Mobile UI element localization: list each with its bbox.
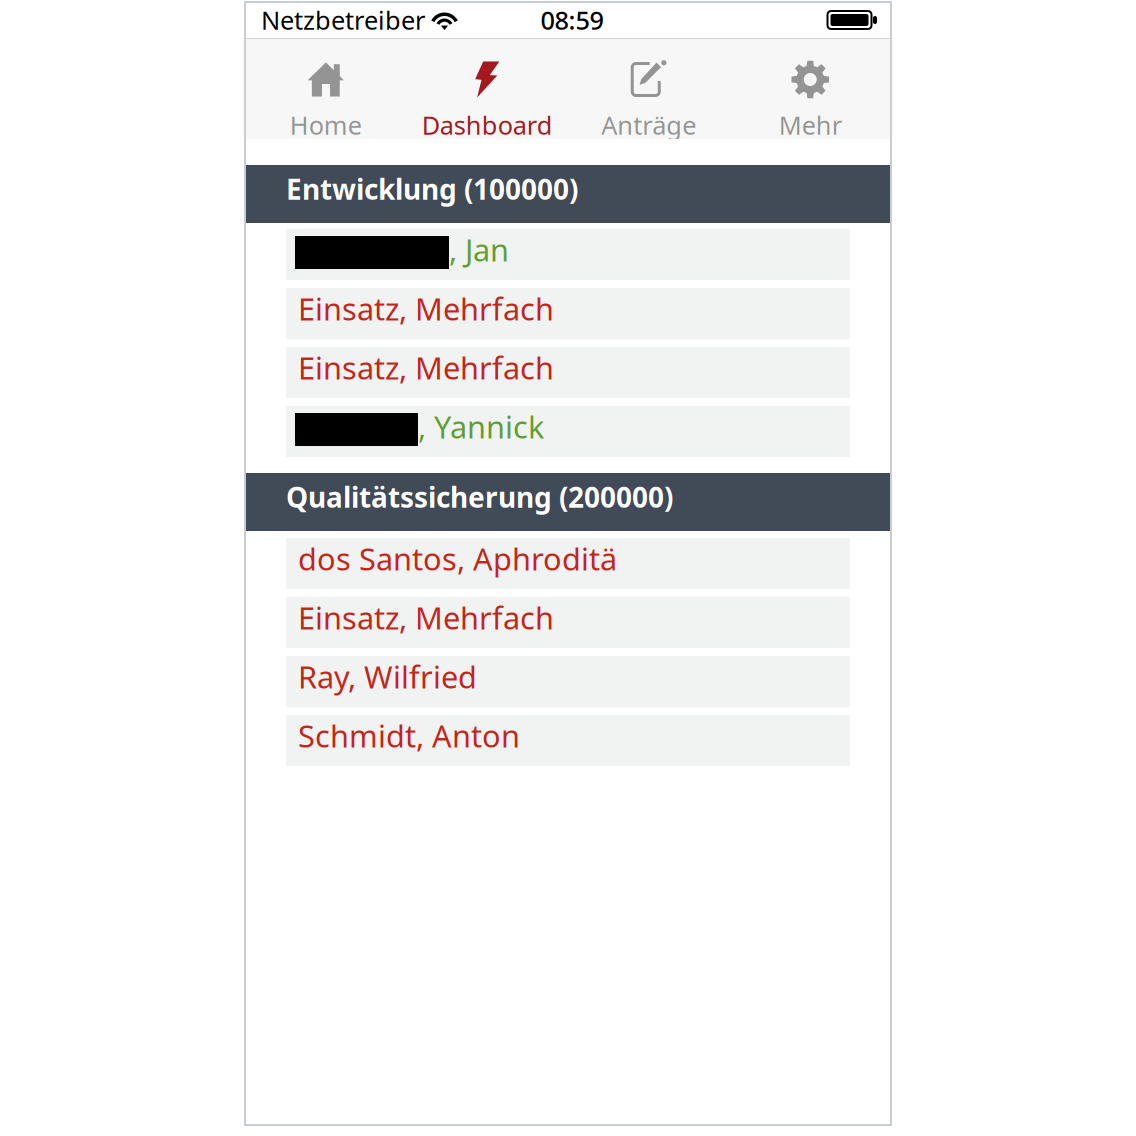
staticText: dos Santos, Aphroditä [298, 538, 617, 579]
button[interactable]: Schmidt, Anton [286, 715, 850, 766]
staticText: Einsatz, Mehrfach [298, 347, 554, 388]
staticText: Netzbetreiber [261, 3, 425, 37]
staticText: 08:59 [540, 3, 603, 37]
staticText: Ray, Wilfried [298, 656, 477, 697]
staticText: Schmidt, Anton [298, 715, 520, 756]
staticText: Qualitätssicherung (200000) [286, 478, 673, 516]
staticText: Anträge [601, 108, 696, 142]
button[interactable]: Mehr [729, 39, 891, 139]
button[interactable]: Einsatz, Mehrfach [286, 597, 850, 648]
button[interactable]: Ray, Wilfried [286, 656, 850, 707]
button[interactable]: , Yannick [286, 406, 850, 457]
staticText: , Jan [449, 229, 509, 270]
button[interactable]: Dashboard [406, 39, 568, 139]
button[interactable]: dos Santos, Aphroditä [286, 538, 850, 589]
staticText: Dashboard [422, 108, 553, 142]
staticText: Einsatz, Mehrfach [298, 288, 554, 329]
button[interactable]: Home [245, 39, 406, 139]
staticText: , Yannick [418, 406, 544, 447]
button[interactable]: Anträge [568, 39, 729, 139]
staticText: Entwicklung (100000) [286, 170, 578, 208]
staticText: Home [290, 108, 362, 142]
staticText: Mehr [779, 108, 842, 142]
button[interactable]: Einsatz, Mehrfach [286, 347, 850, 398]
button[interactable]: , Jan [286, 229, 850, 280]
button[interactable]: Einsatz, Mehrfach [286, 288, 850, 339]
staticText: Einsatz, Mehrfach [298, 597, 554, 638]
